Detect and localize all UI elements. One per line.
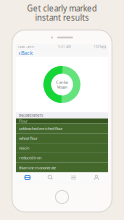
staticText: Vegan xyxy=(57,84,67,89)
button[interactable]: ‹ xyxy=(16,49,33,56)
staticText: 100% xyxy=(94,45,102,49)
staticText: unbleached enriched flour xyxy=(19,126,63,131)
staticText: INGREDIENTS xyxy=(19,113,43,118)
button[interactable]: Profile xyxy=(85,172,108,182)
button[interactable]: List xyxy=(62,172,85,182)
staticText: 9:41 AM xyxy=(58,45,70,49)
staticText: thiamine mononitrate xyxy=(19,165,56,170)
staticText: Back xyxy=(21,49,33,57)
staticText: ‹ xyxy=(18,49,20,57)
staticText: Get clearly marked xyxy=(27,3,97,14)
staticText: wheat flour xyxy=(19,135,38,141)
button[interactable]: Scan xyxy=(16,172,39,182)
staticText: Carrier xyxy=(26,45,35,49)
staticText: niacin xyxy=(19,145,29,151)
staticText: Can be xyxy=(56,79,68,85)
button[interactable]: niacin xyxy=(16,143,108,153)
button[interactable]: thiamine mononitrate xyxy=(16,163,108,172)
staticText: reduced iron xyxy=(19,155,41,160)
button[interactable]: reduced iron xyxy=(16,153,108,163)
button[interactable]: unbleached enriched flour xyxy=(16,123,108,133)
button[interactable]: Search xyxy=(39,172,62,182)
staticText: Flour xyxy=(19,118,28,124)
staticText: instant results xyxy=(35,12,89,23)
button[interactable]: wheat flour xyxy=(16,133,108,143)
